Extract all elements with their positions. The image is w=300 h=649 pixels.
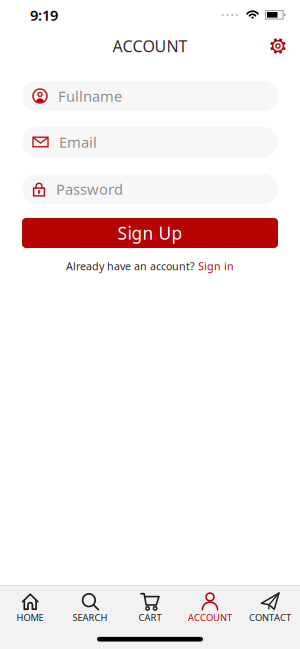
button[interactable] (269, 37, 287, 55)
button[interactable]: Password (22, 174, 278, 204)
staticText: 9:19 (30, 5, 58, 25)
button[interactable]: SEARCH (60, 592, 120, 624)
staticText: ACCOUNT (112, 35, 187, 57)
staticText: CONTACT (249, 611, 291, 624)
staticText: Fullname (58, 86, 122, 106)
button[interactable]: Sign in (198, 259, 234, 273)
button[interactable]: CONTACT (240, 592, 300, 624)
staticText: Email (59, 132, 97, 152)
staticText: Sign Up (117, 221, 182, 244)
button[interactable]: HOME (0, 592, 60, 624)
staticText: Sign in (198, 259, 234, 273)
staticText: ACCOUNT (188, 611, 232, 624)
staticText: Password (56, 179, 123, 199)
staticText: SEARCH (72, 611, 107, 624)
staticText: HOME (16, 611, 43, 624)
button[interactable]: Sign Up (22, 218, 278, 248)
button[interactable]: Email (22, 127, 278, 157)
staticText: CART (138, 611, 161, 624)
button[interactable]: Fullname (22, 81, 278, 111)
staticText: Already have an account? (66, 259, 195, 273)
button[interactable]: CART (120, 592, 180, 624)
button[interactable]: ACCOUNT (180, 592, 240, 624)
